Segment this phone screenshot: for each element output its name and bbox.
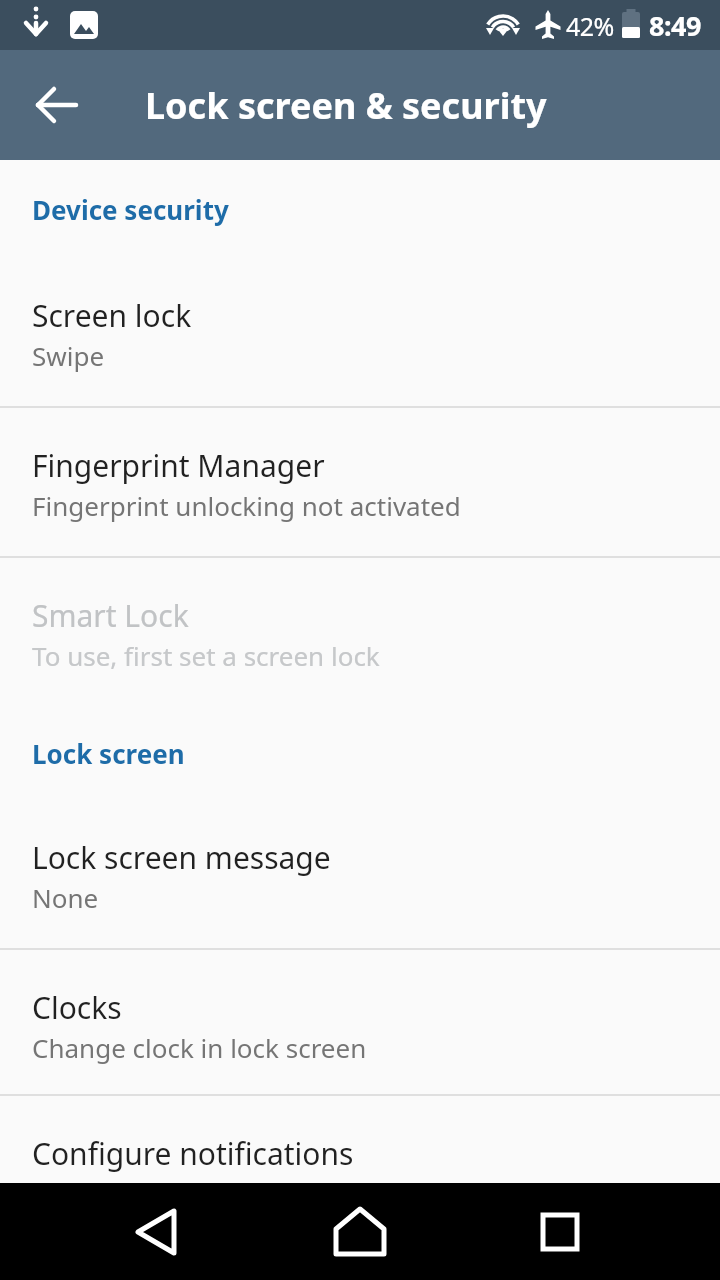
button[interactable]: Smart Lock	[0, 558, 720, 706]
button[interactable]	[0, 50, 80, 160]
button[interactable]	[310, 1183, 410, 1280]
staticText: Lock screen & security	[145, 81, 547, 130]
staticText: Swipe	[32, 338, 105, 373]
staticText: Clocks	[32, 987, 122, 1028]
staticText: Device security	[32, 192, 229, 227]
button[interactable]	[110, 1183, 210, 1280]
staticText: Smart Lock	[32, 595, 189, 636]
staticText: 42%	[566, 9, 614, 43]
staticText: To use, first set a screen lock	[32, 638, 380, 673]
staticText: Fingerprint Manager	[32, 445, 325, 486]
button[interactable]: Lock screen message	[0, 800, 720, 948]
button[interactable]: Configure notifications	[0, 1096, 720, 1183]
staticText: None	[32, 880, 99, 915]
staticText: Lock screen	[32, 736, 185, 771]
staticText: Fingerprint unlocking not activated	[32, 488, 461, 523]
button[interactable]: Fingerprint Manager	[0, 408, 720, 556]
staticText: Configure notifications	[32, 1133, 354, 1174]
staticText: Change clock in lock screen	[32, 1030, 367, 1065]
button[interactable]: Screen lock	[0, 258, 720, 406]
button[interactable]: Clocks	[0, 950, 720, 1094]
staticText: Lock screen message	[32, 837, 331, 878]
button[interactable]	[510, 1183, 610, 1280]
staticText: 8:49	[649, 7, 701, 44]
staticText: Screen lock	[32, 295, 192, 336]
